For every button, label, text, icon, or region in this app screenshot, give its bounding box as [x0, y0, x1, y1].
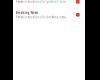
button[interactable]: Breaking News: [13, 11, 85, 22]
staticText: Review instructions for gridiron tone: [15, 0, 66, 3]
staticText: Review instructions for breaking news: [15, 15, 65, 19]
button[interactable]: Review instructions for gridiron tone: [13, 0, 85, 11]
staticText: Breaking News: [15, 11, 37, 14]
